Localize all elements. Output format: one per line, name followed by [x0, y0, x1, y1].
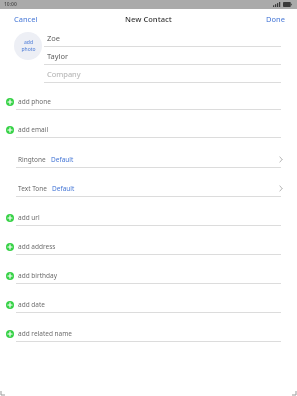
- button[interactable]: add birthday: [0, 268, 297, 284]
- staticText: add address: [18, 242, 56, 251]
- staticText: Company: [47, 69, 81, 79]
- button[interactable]: add email: [0, 122, 297, 138]
- staticText: Default: [52, 184, 75, 193]
- staticText: add birthday: [18, 271, 58, 280]
- staticText: Text Tone: [18, 184, 47, 193]
- staticText: add email: [18, 125, 49, 134]
- button[interactable]: add related name: [0, 326, 297, 342]
- button[interactable]: Company: [44, 65, 281, 83]
- staticText: add: [24, 39, 33, 46]
- button[interactable]: Taylor: [44, 47, 281, 65]
- staticText: Cancel: [14, 14, 38, 24]
- staticText: photo: [21, 46, 36, 53]
- button[interactable]: add date: [0, 297, 297, 313]
- staticText: Default: [51, 155, 74, 164]
- staticText: Done: [266, 14, 285, 24]
- button[interactable]: add phone: [0, 94, 297, 110]
- button[interactable]: Ringtone: [0, 152, 297, 168]
- button[interactable]: add address: [0, 239, 297, 255]
- staticText: add date: [18, 300, 45, 309]
- staticText: Taylor: [47, 51, 69, 61]
- staticText: Zoe: [47, 33, 61, 43]
- staticText: add url: [18, 213, 40, 222]
- staticText: add phone: [18, 97, 51, 106]
- button[interactable]: Cancel: [0, 10, 52, 28]
- staticText: Ringtone: [18, 155, 46, 164]
- staticText: New Contact: [125, 14, 172, 24]
- staticText: 10:00: [4, 1, 17, 8]
- button[interactable]: Done: [254, 10, 297, 28]
- button[interactable]: Zoe: [44, 29, 281, 47]
- button[interactable]: add url: [0, 210, 297, 226]
- staticText: add related name: [18, 329, 72, 338]
- button[interactable]: Add photo: [14, 32, 42, 60]
- button[interactable]: Text Tone: [0, 181, 297, 197]
